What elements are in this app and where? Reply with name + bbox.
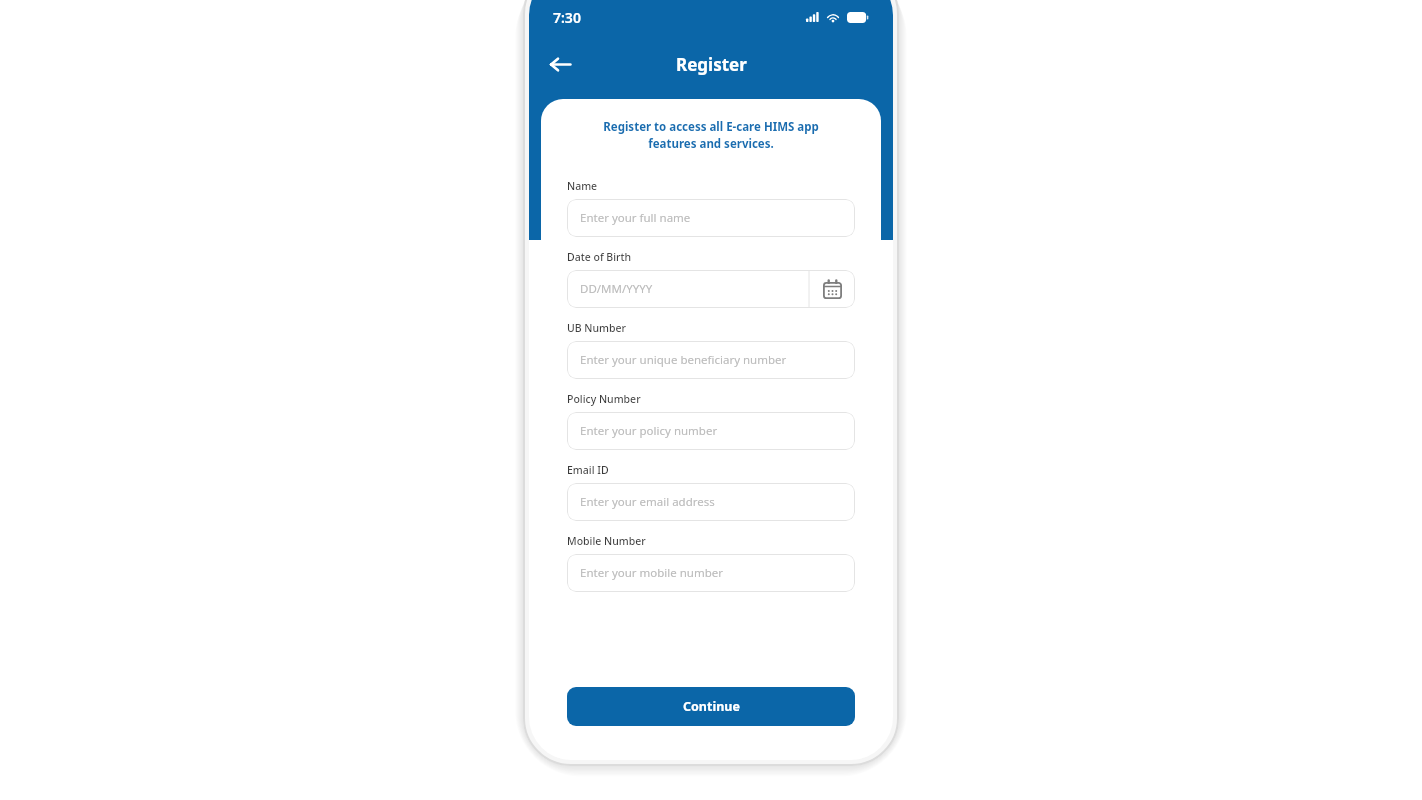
staticText: Email ID: [567, 463, 609, 477]
staticText: Enter your unique beneficiary number: [580, 352, 855, 368]
staticText: 7:30: [553, 8, 581, 27]
button[interactable]: Back: [539, 43, 581, 85]
staticText: DD/MM/YYYY: [580, 281, 809, 297]
button[interactable]: DD/MM/YYYY: [567, 270, 855, 308]
staticText: Mobile Number: [567, 534, 646, 548]
staticText: Name: [567, 179, 598, 193]
button[interactable]: Pick date: [809, 270, 855, 308]
staticText: Continue: [683, 698, 740, 715]
staticText: Enter your mobile number: [580, 565, 855, 581]
staticText: Date of Birth: [567, 250, 632, 264]
staticText: Policy Number: [567, 392, 641, 406]
button[interactable]: Enter your policy number: [567, 412, 855, 450]
button[interactable]: Enter your full name: [567, 199, 855, 237]
staticText: Enter your email address: [580, 494, 855, 510]
staticText: Enter your full name: [580, 210, 855, 226]
button[interactable]: Continue: [567, 687, 855, 726]
staticText: Register to access all E-care HIMS app f…: [567, 119, 855, 152]
staticText: UB Number: [567, 321, 626, 335]
button[interactable]: Enter your unique beneficiary number: [567, 341, 855, 379]
staticText: Register: [676, 53, 747, 76]
button[interactable]: Enter your mobile number: [567, 554, 855, 592]
button[interactable]: Enter your email address: [567, 483, 855, 521]
staticText: Enter your policy number: [580, 423, 855, 439]
